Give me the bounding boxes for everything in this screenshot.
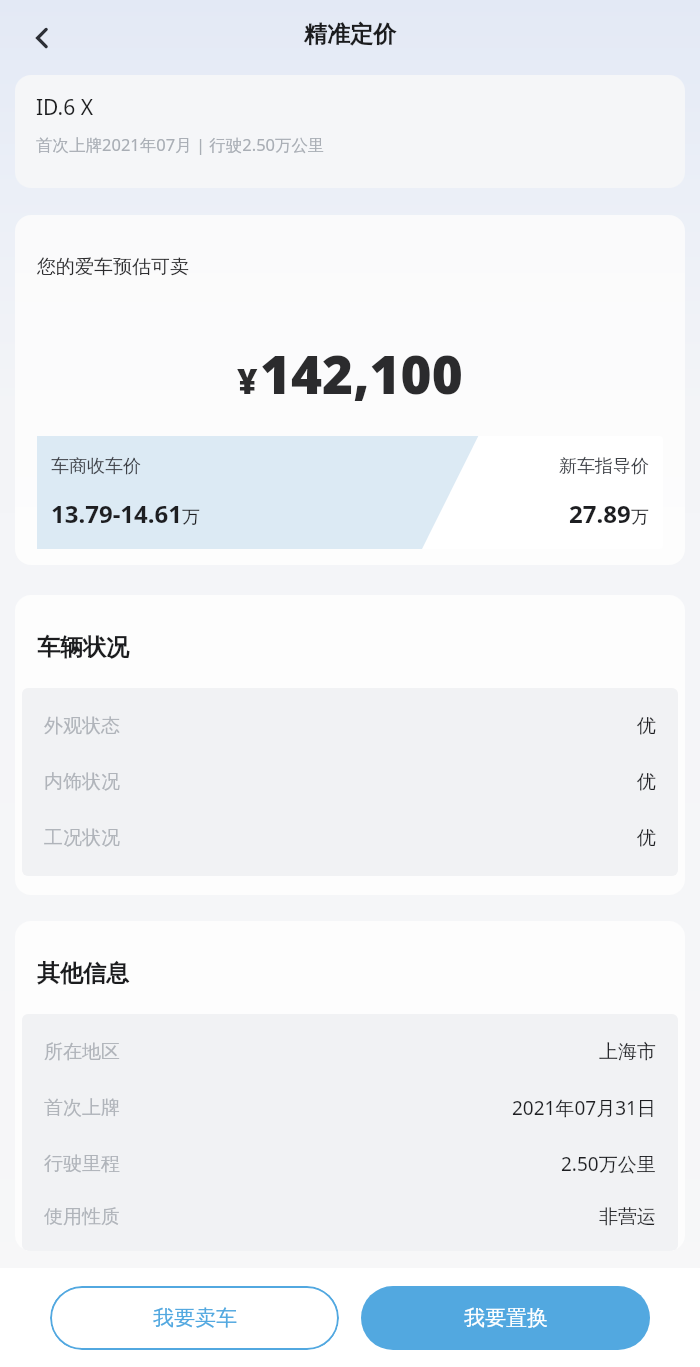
button[interactable]: Back (16, 12, 68, 64)
button[interactable]: 工况状况 (22, 810, 678, 866)
staticText: 您的爱车预估可卖 (37, 255, 189, 279)
staticText: ID.6 X (36, 93, 94, 122)
staticText: 所在地区 (44, 1040, 120, 1064)
staticText: 车辆状况 (37, 633, 129, 662)
staticText: 非营运 (599, 1205, 656, 1229)
staticText: 13.79-14.61 (51, 497, 182, 530)
button[interactable]: 使用性质 (22, 1192, 678, 1241)
staticText: 142,100 (260, 337, 463, 409)
staticText: 精准定价 (304, 20, 396, 49)
staticText: 优 (637, 770, 656, 794)
staticText: 2.50万公里 (561, 1151, 656, 1177)
button[interactable]: 内饰状况 (22, 754, 678, 810)
staticText: 首次上牌2021年07月 | 行驶2.50万公里 (36, 133, 325, 156)
staticText: 新车指导价 (559, 455, 649, 478)
button[interactable]: 我要卖车 (50, 1286, 339, 1350)
staticText: 外观状态 (44, 714, 120, 738)
staticText: 优 (637, 826, 656, 850)
staticText: 车商收车价 (51, 455, 141, 478)
button[interactable]: 首次上牌 (22, 1080, 678, 1136)
staticText: 我要置换 (464, 1305, 548, 1331)
staticText: 2021年07月31日 (512, 1095, 656, 1121)
button[interactable]: 我要置换 (361, 1286, 650, 1350)
staticText: 首次上牌 (44, 1096, 120, 1120)
staticText: 万 (182, 506, 200, 529)
staticText: 万 (631, 506, 649, 529)
staticText: ¥ (237, 357, 258, 405)
staticText: 优 (637, 714, 656, 738)
staticText: 我要卖车 (153, 1305, 237, 1331)
button[interactable]: 外观状态 (22, 698, 678, 754)
staticText: 工况状况 (44, 826, 120, 850)
staticText: 内饰状况 (44, 770, 120, 794)
button[interactable]: 所在地区 (22, 1024, 678, 1080)
button[interactable]: ID.6 X (15, 75, 685, 188)
staticText: 上海市 (599, 1040, 656, 1064)
staticText: 使用性质 (44, 1205, 120, 1229)
button[interactable]: 行驶里程 (22, 1136, 678, 1192)
staticText: 行驶里程 (44, 1152, 120, 1176)
staticText: 其他信息 (37, 959, 129, 988)
staticText: 27.89 (569, 497, 631, 530)
